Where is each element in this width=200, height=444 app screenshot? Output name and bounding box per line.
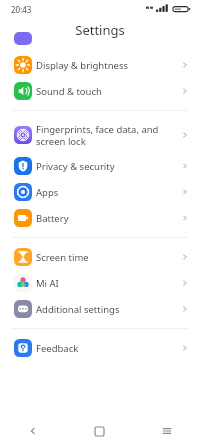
staticText: Privacy & security — [36, 160, 181, 173]
button[interactable]: Home — [66, 418, 133, 444]
staticText: Mi AI — [36, 277, 181, 290]
staticText: Display & brightness — [36, 59, 181, 72]
button[interactable]: Mi AI — [0, 270, 200, 296]
button[interactable]: Additional settings — [0, 296, 200, 322]
staticText: Settings — [75, 21, 125, 39]
staticText: Apps — [36, 186, 181, 199]
staticText: Feedback — [36, 342, 181, 355]
button[interactable]: Sound & touch — [0, 78, 200, 104]
button[interactable]: Privacy & security — [0, 153, 200, 179]
staticText: 20:43 — [11, 4, 32, 15]
staticText: Battery — [36, 212, 181, 225]
button[interactable]: Feedback — [0, 335, 200, 361]
button[interactable]: Screen time — [0, 244, 200, 270]
button[interactable]: Fingerprints, face data, and screen lock — [0, 117, 200, 153]
button[interactable]: Back — [0, 418, 66, 444]
button[interactable]: Apps — [0, 179, 200, 205]
button[interactable]: Recent apps — [133, 418, 200, 444]
staticText: Screen time — [36, 251, 181, 264]
staticText: Additional settings — [36, 303, 181, 316]
staticText: Sound & touch — [36, 85, 181, 98]
button[interactable]: Battery — [0, 205, 200, 231]
button[interactable]: Display & brightness — [0, 52, 200, 78]
staticText: Fingerprints, face data, and screen lock — [36, 123, 181, 148]
